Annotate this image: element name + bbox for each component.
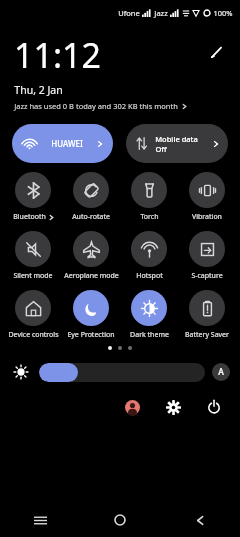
staticText: Ufone	[118, 8, 140, 18]
button[interactable]: Power	[202, 395, 226, 419]
staticText: Bluetooth	[13, 212, 46, 222]
button[interactable]: Vibration	[178, 172, 236, 222]
staticText: Auto-rotate	[72, 212, 110, 222]
staticText: S-capture	[191, 271, 223, 281]
button[interactable]: S-capture	[178, 231, 236, 281]
button[interactable]: User	[120, 395, 144, 419]
button[interactable]: Back	[183, 503, 217, 537]
button[interactable]: Silent mode	[4, 231, 62, 281]
staticText: HUAWEI	[51, 138, 83, 149]
staticText: Off	[155, 144, 167, 154]
staticText: Jazz	[154, 8, 168, 18]
button[interactable]: Jazz has used 0 B today and 302 KB this …	[14, 101, 187, 111]
button[interactable]: Device controls	[4, 290, 62, 340]
button[interactable]: Home	[103, 503, 137, 537]
button[interactable]: Dark theme	[120, 290, 178, 340]
button[interactable]: Edit	[204, 40, 228, 64]
button[interactable]: Bluetooth	[4, 172, 62, 222]
button[interactable]: Hotspot	[120, 231, 178, 281]
staticText: Torch	[140, 212, 159, 222]
staticText: Eye Protection	[67, 330, 115, 340]
staticText: 11:12	[14, 32, 101, 78]
button[interactable]: Torch	[120, 172, 178, 222]
staticText: 100%	[213, 8, 233, 18]
button[interactable]: Mobile data	[126, 124, 228, 163]
staticText: Battery Saver	[185, 330, 229, 340]
button[interactable]: Recents	[23, 503, 57, 537]
button[interactable]: Battery Saver	[178, 290, 236, 340]
staticText: Device controls	[8, 330, 59, 340]
button[interactable]: Settings	[161, 395, 185, 419]
staticText: Jazz has used 0 B today and 302 KB this …	[14, 101, 178, 111]
button[interactable]: Eye Protection	[62, 290, 120, 340]
button[interactable]: HUAWEI	[12, 124, 113, 163]
staticText: Silent mode	[13, 271, 53, 281]
staticText: Vibration	[192, 212, 222, 222]
button[interactable]: Auto brightness	[212, 363, 230, 381]
staticText: A	[218, 366, 224, 378]
button[interactable]: Brightness	[10, 361, 32, 383]
staticText: Thu, 2 Jan	[14, 83, 63, 97]
staticText: Mobile data	[155, 134, 198, 144]
staticText: Dark theme	[130, 330, 169, 340]
staticText: Hotspot	[136, 271, 163, 281]
button[interactable]	[39, 363, 205, 382]
button[interactable]: Aeroplane mode	[62, 231, 120, 281]
staticText: Aeroplane mode	[64, 271, 119, 281]
button[interactable]: Auto-rotate	[62, 172, 120, 222]
